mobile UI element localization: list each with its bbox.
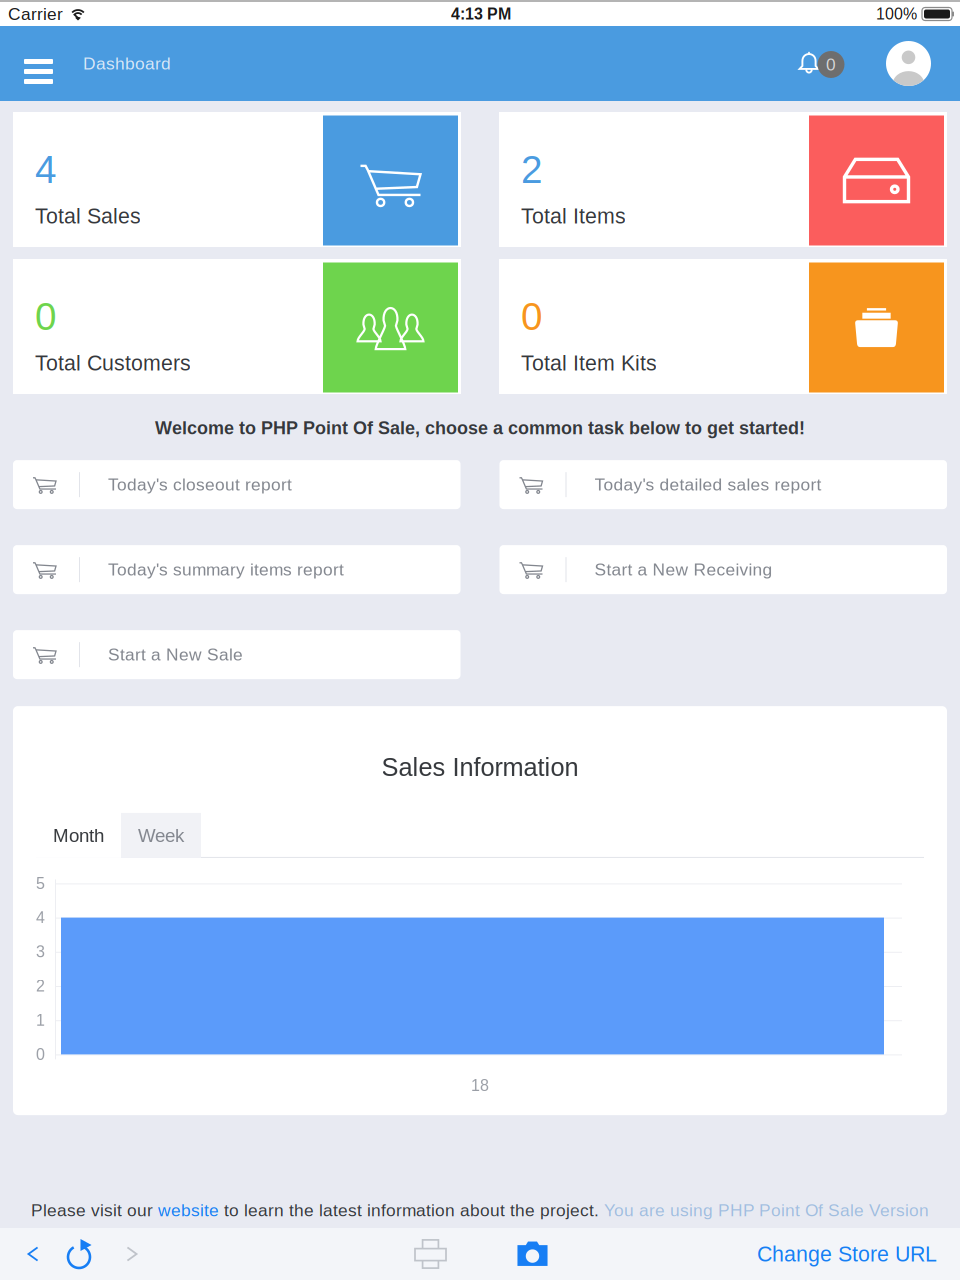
button[interactable]: Week: [121, 813, 201, 858]
button[interactable]: Start a New Sale: [13, 630, 460, 679]
staticText: 0: [35, 295, 57, 338]
button[interactable]: Menu: [0, 26, 83, 101]
staticText: Total Item Kits: [521, 351, 657, 375]
staticText: 18: [471, 1076, 489, 1094]
staticText: 0: [521, 295, 543, 338]
staticText: Dashboard: [83, 54, 171, 73]
staticText: 1: [36, 1011, 45, 1029]
staticText: 4:13 PM: [451, 5, 511, 23]
staticText: Please visit our: [31, 1201, 158, 1220]
button[interactable]: Change Store URL: [745, 1228, 960, 1280]
button[interactable]: Print: [396, 1228, 464, 1280]
staticText: 0: [826, 55, 836, 74]
staticText: 4: [36, 909, 45, 927]
staticText: Total Sales: [35, 204, 141, 228]
staticText: to learn the latest information about th…: [219, 1201, 604, 1220]
staticText: Welcome to PHP Point Of Sale, choose a c…: [155, 418, 805, 438]
button[interactable]: Today's detailed sales report: [499, 460, 947, 509]
staticText: 4: [35, 148, 57, 191]
button[interactable]: Today's summary items report: [13, 545, 460, 594]
staticText: Carrier: [8, 4, 63, 24]
staticText: 2: [521, 148, 543, 191]
button[interactable]: Account: [874, 26, 960, 101]
button[interactable]: Notifications: [792, 26, 874, 101]
button[interactable]: Today's closeout report: [13, 460, 460, 509]
staticText: Change Store URL: [757, 1242, 937, 1266]
button[interactable]: Back: [0, 1228, 54, 1280]
staticText: Today's summary items report: [108, 560, 344, 579]
staticText: 3: [36, 943, 45, 961]
staticText: 2: [36, 977, 45, 995]
staticText: Sales Information: [381, 753, 578, 781]
staticText: You are using PHP Point Of Sale Version: [604, 1201, 929, 1220]
staticText: Week: [138, 825, 184, 846]
staticText: Start a New Sale: [108, 645, 243, 664]
staticText: 5: [36, 874, 45, 892]
button[interactable]: Reload: [54, 1228, 104, 1280]
staticText: website: [158, 1201, 219, 1220]
staticText: 0: [36, 1045, 45, 1063]
button[interactable]: Camera: [498, 1228, 566, 1280]
staticText: Total Items: [521, 204, 626, 228]
button[interactable]: Month: [36, 813, 121, 858]
button[interactable]: Start a New Receiving: [499, 545, 947, 594]
staticText: Start a New Receiving: [594, 560, 772, 579]
staticText: Total Customers: [35, 351, 191, 375]
button[interactable]: Forward: [104, 1228, 160, 1280]
staticText: 100%: [876, 5, 917, 23]
staticText: Today's detailed sales report: [594, 475, 821, 494]
staticText: Today's closeout report: [108, 475, 292, 494]
staticText: Month: [53, 825, 104, 846]
